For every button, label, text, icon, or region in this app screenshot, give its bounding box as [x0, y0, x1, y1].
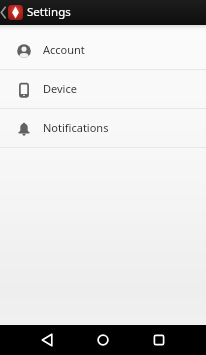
staticText: Device [43, 81, 77, 96]
button[interactable]: Device [0, 70, 206, 108]
staticText: Notifications [43, 120, 109, 135]
staticText: Settings [27, 4, 71, 20]
button[interactable] [88, 325, 118, 355]
button[interactable] [32, 325, 62, 355]
button[interactable]: Account [0, 31, 206, 69]
button[interactable] [144, 325, 174, 355]
button[interactable]: Settings [0, 0, 71, 25]
staticText: Account [43, 42, 85, 57]
button[interactable]: Notifications [0, 109, 206, 147]
